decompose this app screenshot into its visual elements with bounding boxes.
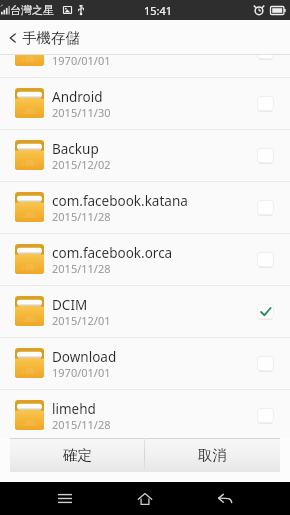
staticText: 手機存儲 — [22, 29, 80, 47]
staticText: 台灣之星 — [10, 3, 54, 17]
button[interactable]: 1970/01/01 — [0, 55, 290, 78]
staticText: com.facebook.katana — [52, 192, 188, 210]
staticText: Download — [52, 348, 117, 366]
staticText: 1970/01/01 — [52, 55, 111, 68]
staticText: 2015/12/01 — [52, 313, 111, 328]
button[interactable]: com.facebook.orca — [0, 234, 290, 286]
staticText: Backup — [52, 140, 99, 158]
staticText: Android — [52, 88, 103, 106]
button[interactable]: Back — [0, 20, 290, 55]
button[interactable]: Select item — [257, 55, 274, 60]
button[interactable]: Select item — [257, 200, 274, 216]
button[interactable]: Select item — [257, 408, 274, 424]
button[interactable]: Select item — [257, 96, 274, 112]
staticText: com.facebook.orca — [52, 244, 173, 262]
button[interactable]: com.facebook.katana — [0, 182, 290, 234]
button[interactable]: Back — [201, 482, 249, 515]
button[interactable]: Backup — [0, 130, 290, 182]
staticText: 取消 — [198, 446, 227, 464]
button[interactable]: Select item — [257, 252, 274, 268]
button[interactable]: Menu — [41, 482, 89, 515]
button[interactable]: Home — [121, 482, 169, 515]
staticText: 15:41 — [144, 3, 173, 18]
staticText: 確定 — [63, 446, 92, 464]
staticText: 2015/12/02 — [52, 157, 111, 172]
button[interactable]: limehd — [0, 390, 290, 438]
staticText: 2015/11/30 — [52, 105, 111, 120]
button[interactable]: 取消 — [145, 438, 280, 472]
staticText: 2015/11/28 — [52, 417, 111, 432]
staticText: DCIM — [52, 296, 88, 314]
button[interactable]: 確定 — [10, 438, 144, 472]
staticText: limehd — [52, 400, 96, 418]
other: Back — [9, 32, 16, 44]
button[interactable]: Select item — [257, 148, 274, 164]
staticText: 1970/01/01 — [52, 365, 111, 380]
staticText: 2015/11/28 — [52, 261, 111, 276]
button[interactable]: Select item — [257, 356, 274, 372]
button[interactable]: Android — [0, 78, 290, 130]
button[interactable]: Select item — [257, 304, 274, 320]
staticText: 2015/11/28 — [52, 209, 111, 224]
button[interactable]: DCIM — [0, 286, 290, 338]
button[interactable]: Download — [0, 338, 290, 390]
